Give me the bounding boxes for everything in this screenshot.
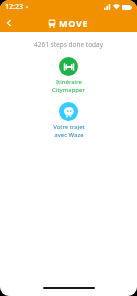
staticText: Citymapper	[52, 86, 85, 94]
staticText: 4261 steps done today	[34, 40, 104, 49]
staticText: MOVE	[59, 17, 89, 29]
staticText: 12:23	[5, 2, 23, 12]
button[interactable]: Back	[0, 14, 18, 32]
button[interactable]: Itinéraire Citymapper	[0, 56, 137, 95]
staticText: Votre trajet	[53, 123, 85, 131]
staticText: Itinéraire	[56, 78, 82, 86]
button[interactable]: Votre trajet avec Waze	[0, 101, 137, 140]
staticText: avec Waze	[54, 131, 84, 139]
